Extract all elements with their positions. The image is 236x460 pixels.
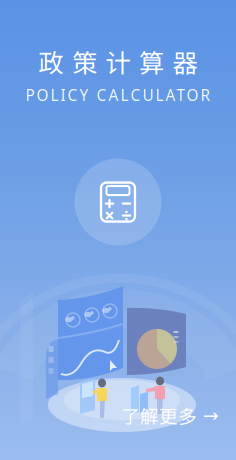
staticText: → [203,405,219,426]
staticText: 了解更多 [121,402,197,429]
staticText: 政策计算器 [38,43,197,80]
button[interactable]: 了解更多 [121,402,219,429]
staticText: POLICY CALCULATOR [25,85,210,106]
